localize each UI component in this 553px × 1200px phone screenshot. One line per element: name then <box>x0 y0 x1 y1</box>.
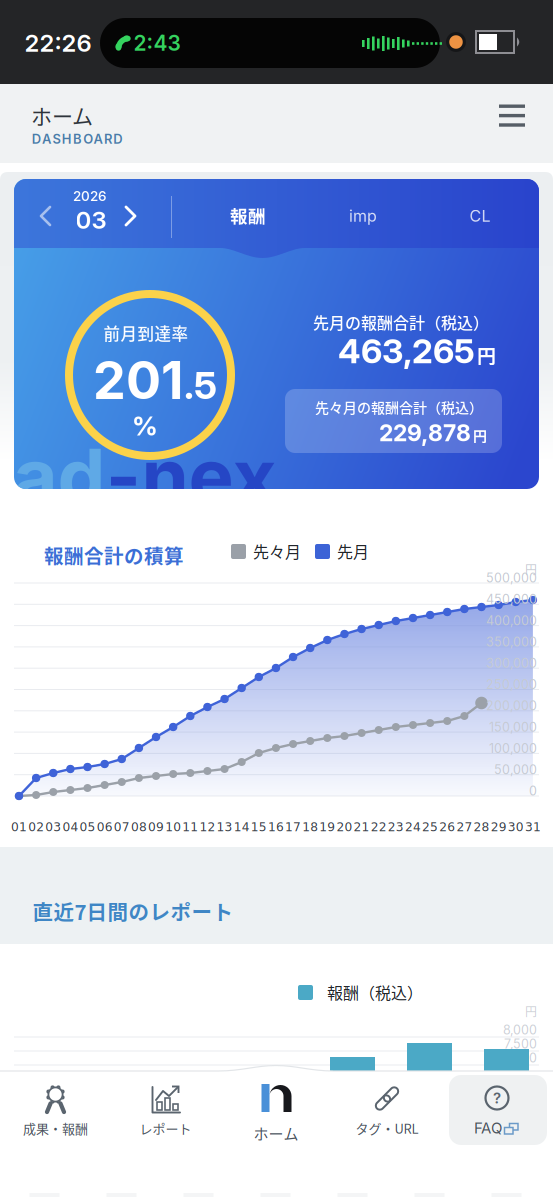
button[interactable]: ホーム <box>231 1067 321 1153</box>
button[interactable]: FAQ <box>447 1067 547 1153</box>
staticText: .5 <box>184 362 217 408</box>
staticText: 報酬 <box>230 202 266 228</box>
staticText: 100,000 <box>489 741 537 756</box>
staticText: 02 <box>28 820 44 834</box>
button[interactable]: Previous month <box>37 201 55 231</box>
button[interactable]: 成果・報酬 <box>10 1067 100 1153</box>
staticText: 03 <box>75 205 106 234</box>
staticText: CL <box>469 206 490 226</box>
staticText: 450,000 <box>486 592 537 607</box>
staticText: ホーム <box>253 1122 298 1144</box>
staticText: 09 <box>148 820 164 834</box>
staticText: 250,000 <box>486 677 537 692</box>
staticText: 500,000 <box>486 570 537 585</box>
staticText: 201 <box>93 348 183 411</box>
staticText: 直近7日間のレポート <box>32 896 233 926</box>
staticText: 06 <box>97 820 113 834</box>
staticText: 報酬合計の積算 <box>44 541 184 569</box>
staticText: 29 <box>491 820 507 834</box>
staticText: 150,000 <box>489 719 537 735</box>
staticText: 28 <box>473 820 489 834</box>
staticText: 10 <box>165 820 181 834</box>
staticText: 成果・報酬 <box>23 1119 88 1137</box>
staticText: 8,000 <box>503 1022 537 1037</box>
staticText: 円 <box>525 560 537 578</box>
staticText: 17 <box>285 820 301 834</box>
staticText: FAQ <box>474 1119 502 1137</box>
staticText: 11 <box>182 820 198 834</box>
staticText: 7,000 <box>504 1050 537 1065</box>
staticText: 13 <box>217 820 233 834</box>
staticText: 12 <box>199 820 215 834</box>
staticText: 24 <box>405 820 421 834</box>
staticText: 23 <box>388 820 404 834</box>
staticText: ? <box>493 1089 501 1107</box>
staticText: % <box>132 410 158 442</box>
staticText: タグ・URL <box>355 1119 418 1137</box>
staticText: 229,878 <box>379 419 471 447</box>
staticText: 先々月 <box>253 539 301 563</box>
button[interactable]: Next month <box>121 201 139 231</box>
staticText: 25 <box>422 820 438 834</box>
button[interactable]: 報酬 <box>230 202 266 228</box>
staticText: 先月の報酬合計（税込） <box>313 310 489 334</box>
staticText: 14 <box>234 820 250 834</box>
staticText: 前月到達率 <box>103 321 188 345</box>
staticText: 19 <box>319 820 335 834</box>
staticText: 円 <box>477 341 496 369</box>
staticText: 463,265 <box>338 330 475 371</box>
staticText: 26 <box>439 820 455 834</box>
staticText: -nex <box>105 430 276 522</box>
staticText: imp <box>349 206 377 226</box>
button[interactable]: imp <box>349 206 377 226</box>
staticText: 350,000 <box>486 634 537 649</box>
staticText: 05 <box>79 820 95 834</box>
staticText: 22:26 <box>24 28 91 57</box>
staticText: 400,000 <box>486 613 537 628</box>
staticText: 300,000 <box>486 656 537 671</box>
button[interactable]: レポート <box>120 1067 210 1153</box>
staticText: 16 <box>268 820 284 834</box>
staticText: 円 <box>525 1002 537 1020</box>
staticText: 01 <box>11 820 27 834</box>
staticText: 2026 <box>73 188 107 204</box>
staticText: 03 <box>45 820 61 834</box>
staticText: 2:43 <box>133 30 180 56</box>
button[interactable]: Menu <box>0 0 553 1200</box>
staticText: 31 <box>525 820 541 834</box>
staticText: 20 <box>336 820 352 834</box>
staticText: 15 <box>251 820 267 834</box>
staticText: 0 <box>529 783 537 798</box>
staticText: 21 <box>354 820 370 834</box>
staticText: 08 <box>131 820 147 834</box>
staticText: 30 <box>508 820 524 834</box>
staticText: 7,500 <box>504 1036 537 1051</box>
staticText: ホーム <box>31 100 93 130</box>
staticText: 先月 <box>337 539 369 563</box>
staticText: 円 <box>473 425 487 445</box>
button[interactable]: タグ・URL <box>342 1067 432 1153</box>
staticText: 04 <box>62 820 78 834</box>
staticText: 22 <box>371 820 387 834</box>
staticText: 報酬（税込） <box>327 980 423 1004</box>
staticText: 27 <box>456 820 472 834</box>
button[interactable]: CL <box>469 206 490 226</box>
staticText: DASHBOARD <box>32 131 122 147</box>
staticText: レポート <box>139 1119 191 1137</box>
staticText: 200,000 <box>486 698 537 713</box>
staticText: ad <box>13 430 105 522</box>
staticText: 先々月の報酬合計（税込） <box>315 397 483 417</box>
staticText: 18 <box>302 820 318 834</box>
staticText: 50,000 <box>494 762 537 777</box>
staticText: 07 <box>114 820 130 834</box>
